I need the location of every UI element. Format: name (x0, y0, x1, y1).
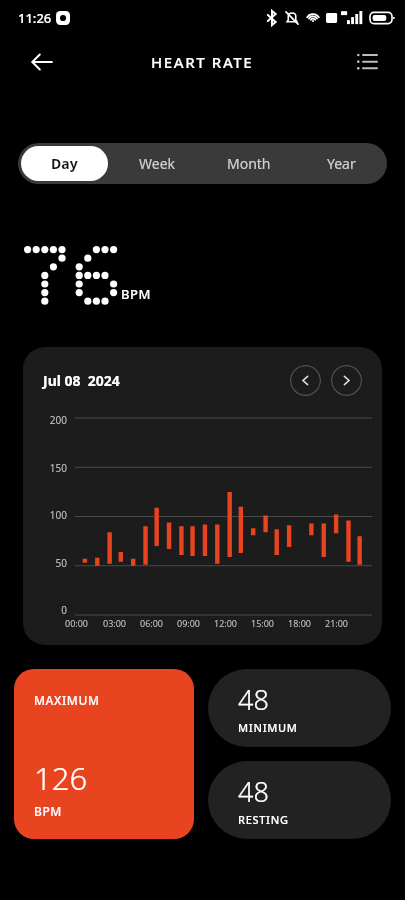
staticText: 03:00 (103, 617, 127, 629)
staticText: 06:00 (140, 617, 164, 629)
button[interactable]: MAXIMUM (14, 669, 194, 839)
staticText: Jul 08 2024 (43, 371, 120, 390)
staticText: 126 (34, 757, 88, 799)
button[interactable]: Menu (347, 42, 387, 82)
staticText: Week (139, 154, 176, 173)
button[interactable]: 48 (208, 761, 391, 839)
button[interactable]: 48 (208, 669, 391, 747)
button[interactable]: Back (22, 42, 62, 82)
button[interactable]: Day (21, 146, 108, 181)
staticText: 00:00 (65, 617, 89, 629)
button[interactable]: Year (298, 146, 384, 181)
staticText: 18:00 (288, 617, 312, 629)
staticText: Day (51, 154, 78, 173)
staticText: MINIMUM (238, 720, 298, 735)
button[interactable]: Week (114, 146, 200, 181)
button[interactable]: Previous day (290, 365, 321, 396)
button[interactable]: Next day (331, 365, 362, 396)
staticText: 200 (23, 413, 67, 427)
staticText: 11:26 (18, 9, 52, 27)
staticText: 0 (23, 603, 67, 617)
staticText: Year (327, 154, 356, 173)
staticText: MAXIMUM (34, 692, 100, 708)
staticText: 21:00 (325, 617, 349, 629)
staticText: Month (227, 154, 271, 173)
staticText: 15:00 (251, 617, 275, 629)
button[interactable]: Month (206, 146, 292, 181)
staticText: 48 (238, 773, 269, 810)
staticText: 48 (238, 681, 269, 718)
staticText: 100 (23, 508, 67, 522)
staticText: 09:00 (177, 617, 201, 629)
staticText: 50 (23, 556, 67, 570)
staticText: BPM (121, 285, 151, 303)
staticText: HEART RATE (151, 52, 254, 72)
staticText: 150 (23, 461, 67, 475)
staticText: RESTING (238, 812, 289, 827)
staticText: BPM (34, 803, 62, 819)
staticText: 12:00 (214, 617, 238, 629)
